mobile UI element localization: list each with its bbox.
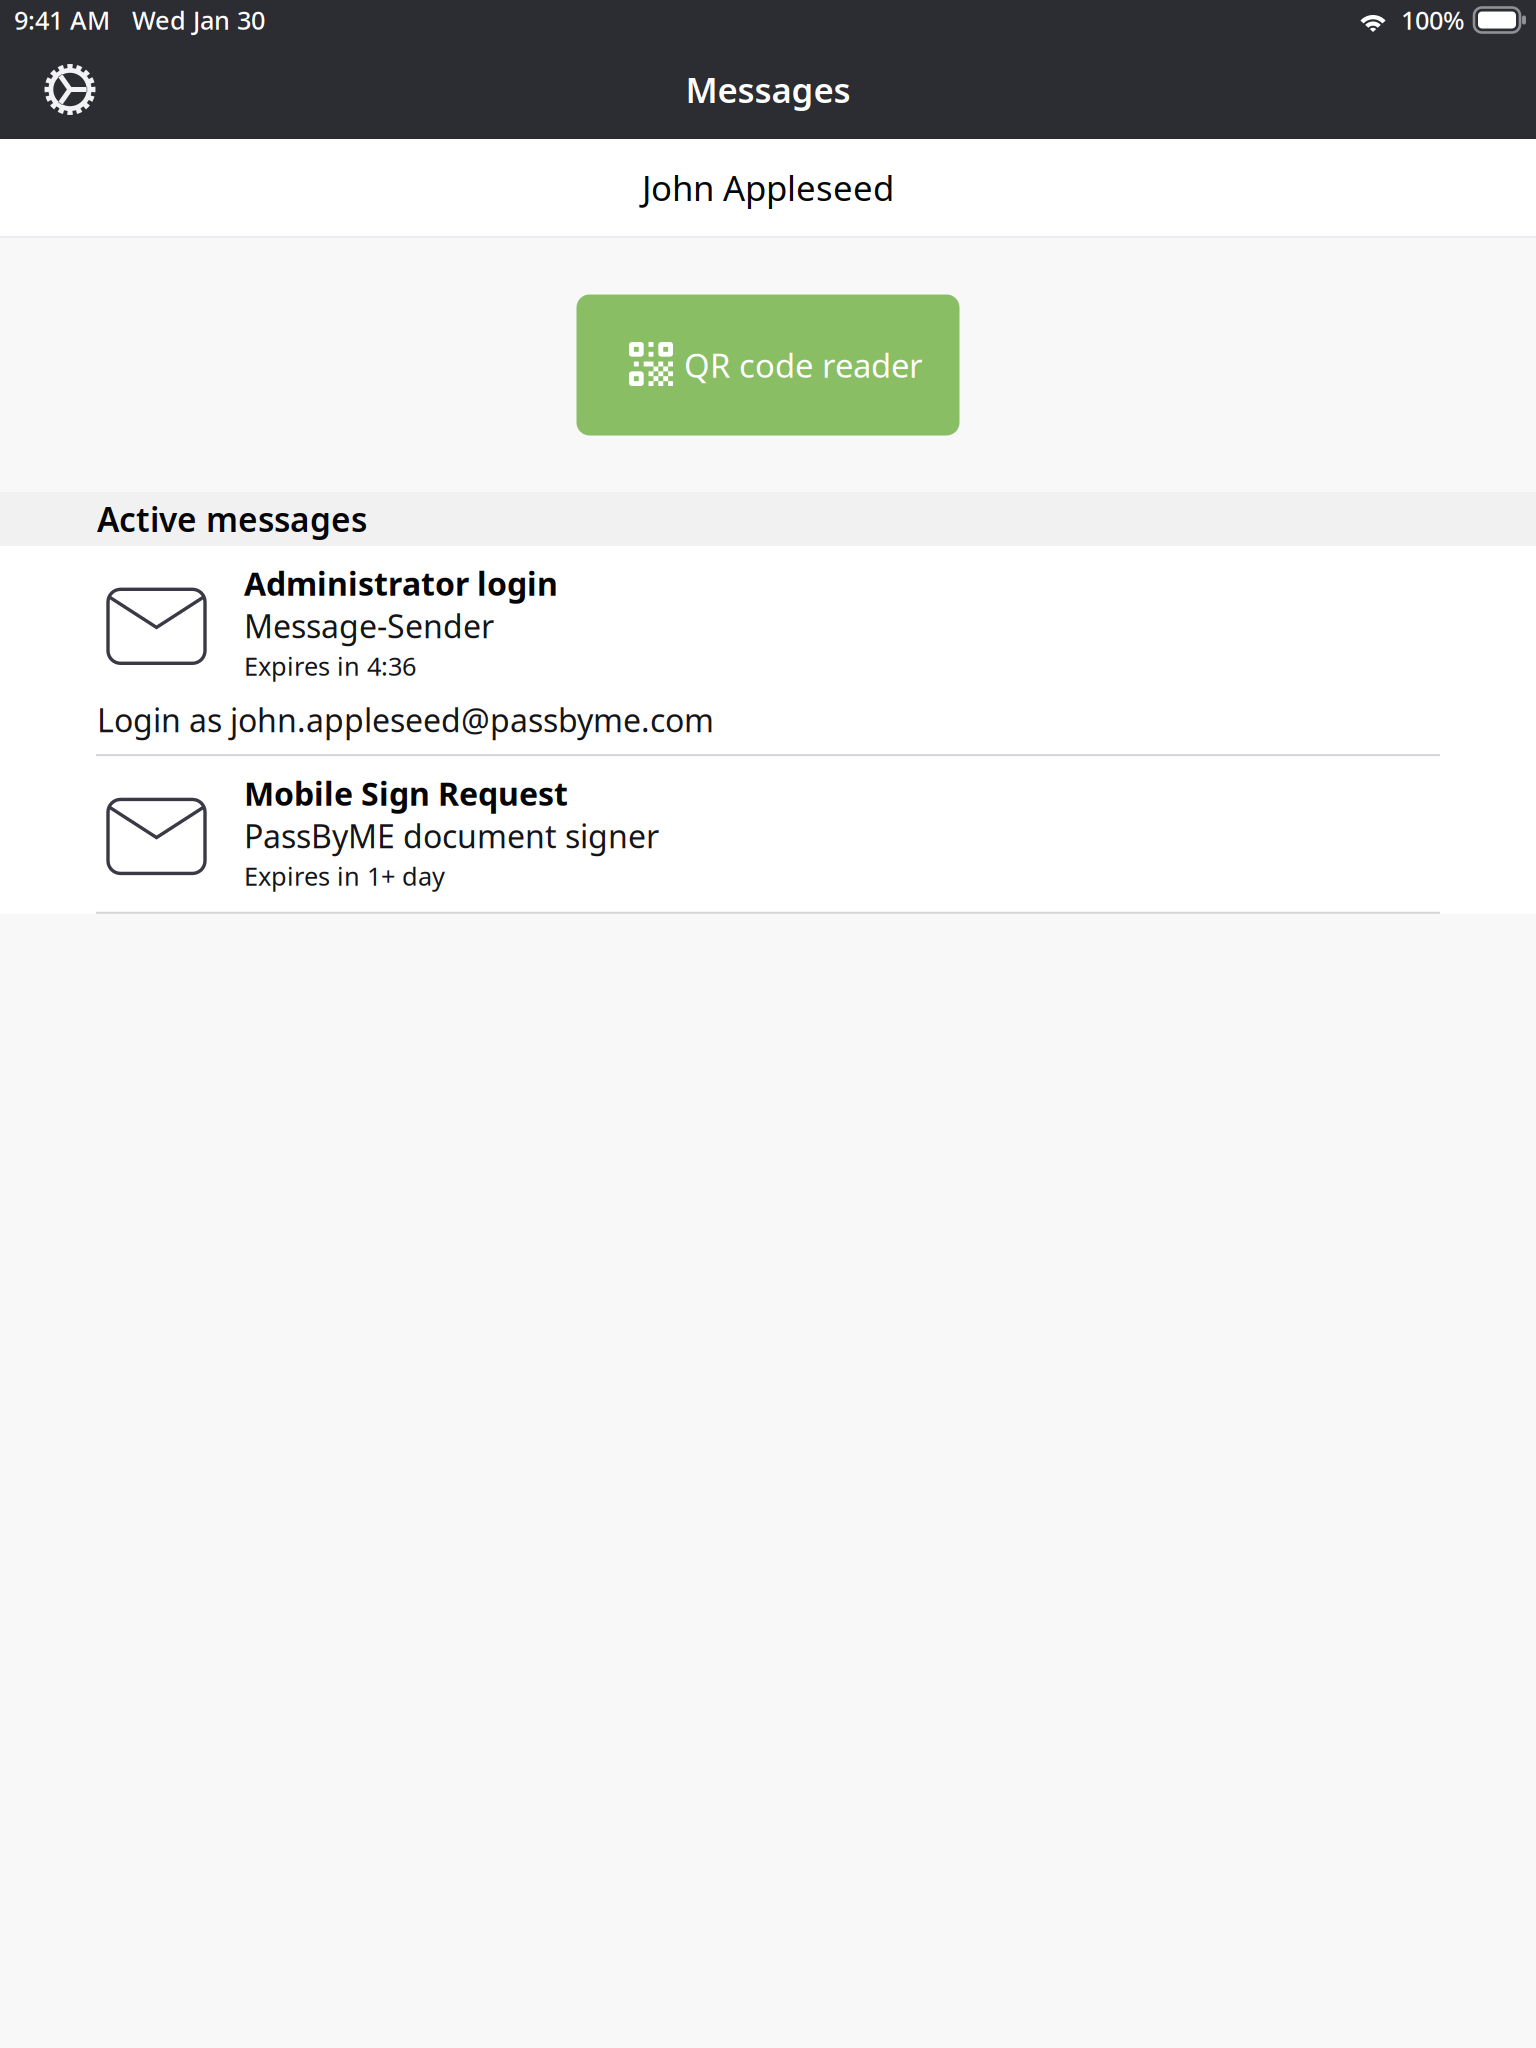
staticText: PassByME document signer bbox=[244, 815, 659, 857]
staticText: 9:41 AM bbox=[14, 3, 110, 37]
staticText: Message-Sender bbox=[244, 604, 494, 647]
button[interactable]: Settings bbox=[26, 45, 114, 133]
button[interactable]: Administrator login bbox=[0, 546, 1536, 756]
staticText: Expires in 1+ day bbox=[244, 859, 445, 893]
button[interactable]: Mobile Sign Request bbox=[0, 756, 1536, 914]
staticText: John Appleseed bbox=[642, 164, 894, 210]
staticText: Expires in 4:36 bbox=[244, 649, 416, 683]
button[interactable]: QR code reader bbox=[576, 294, 959, 435]
staticText: Active messages bbox=[97, 497, 367, 541]
staticText: QR code reader bbox=[684, 343, 923, 387]
staticText: Login as john.appleseed@passbyme.com bbox=[97, 699, 714, 741]
staticText: Wed Jan 30 bbox=[132, 3, 265, 37]
staticText: Mobile Sign Request bbox=[244, 772, 568, 815]
staticText: Administrator login bbox=[244, 562, 558, 604]
staticText: 100% bbox=[1401, 3, 1465, 37]
staticText: Messages bbox=[685, 66, 850, 112]
